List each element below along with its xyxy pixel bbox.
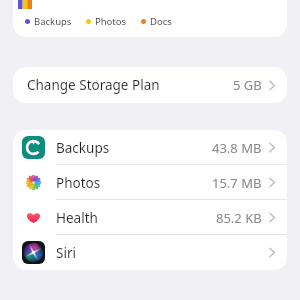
staticText: Health: [56, 209, 98, 227]
staticText: Change Storage Plan: [27, 76, 160, 94]
other: Photos: [22, 171, 45, 194]
staticText: Siri: [56, 244, 76, 262]
button[interactable]: Siri: [13, 235, 287, 270]
staticText: Photos: [56, 174, 101, 192]
button[interactable]: Health: [13, 200, 287, 235]
other: Open: [269, 80, 275, 91]
other: Open: [269, 247, 275, 258]
button[interactable]: Photos: [13, 165, 287, 200]
staticText: 43.8 MB: [212, 139, 262, 157]
staticText: Backups: [56, 139, 110, 157]
staticText: Photos: [95, 15, 127, 28]
other: Open: [269, 177, 275, 188]
other: Siri: [22, 241, 45, 264]
button[interactable]: Change Storage Plan: [13, 67, 287, 103]
other: Open: [269, 142, 275, 153]
other: Open: [269, 212, 275, 223]
staticText: 15.7 MB: [212, 174, 262, 192]
staticText: 85.2 KB: [216, 209, 262, 227]
other: Health: [22, 206, 45, 229]
staticText: Backups: [34, 15, 72, 28]
other: Backups: [22, 136, 45, 159]
staticText: 5 GB: [233, 76, 262, 94]
staticText: Docs: [150, 15, 172, 28]
button[interactable]: Backups: [13, 130, 287, 165]
